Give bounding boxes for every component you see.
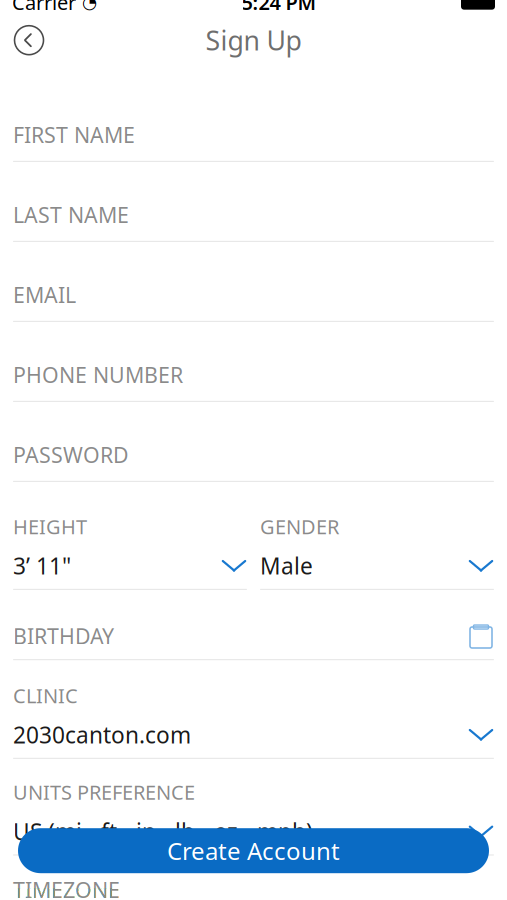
staticText: UNITS PREFERENCE: [13, 779, 195, 805]
staticText: 2030canton.com: [13, 720, 191, 750]
button[interactable]: GENDER: [260, 513, 494, 590]
staticText: 3’ 11": [13, 551, 71, 581]
staticText: PASSWORD: [13, 440, 129, 469]
staticText: PHONE NUMBER: [13, 360, 183, 389]
staticText: BIRTHDAY: [13, 622, 114, 650]
staticText: EMAIL: [13, 280, 76, 309]
button[interactable]: BIRTHDAY: [13, 622, 494, 660]
button[interactable]: CLINIC: [13, 682, 494, 759]
staticText: Sign Up: [205, 22, 301, 58]
staticText: ◔: [82, 0, 97, 12]
staticText: LAST NAME: [13, 200, 129, 229]
button[interactable]: HEIGHT: [13, 513, 247, 590]
staticText: CLINIC: [13, 682, 78, 709]
button[interactable]: Create Account: [18, 828, 489, 873]
staticText: US (mi - ft - in - lb - oz - mph): [13, 816, 313, 846]
staticText: GENDER: [260, 513, 339, 540]
staticText: HEIGHT: [13, 513, 87, 540]
staticText: Carrier: [12, 0, 76, 16]
staticText: TIMEZONE: [13, 875, 120, 900]
staticText: Male: [260, 551, 313, 581]
button[interactable]: Back: [6, 19, 52, 61]
staticText: Create Account: [167, 835, 340, 867]
button[interactable]: UNITS PREFERENCE: [13, 779, 494, 855]
staticText: FIRST NAME: [13, 120, 135, 149]
staticText: 5:24 PM: [241, 0, 316, 16]
